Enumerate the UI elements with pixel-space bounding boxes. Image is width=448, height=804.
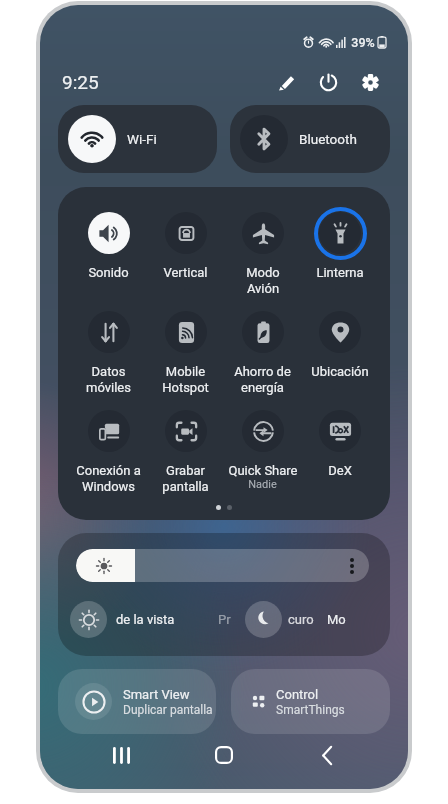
button[interactable]: Sonido xyxy=(70,206,147,305)
staticText: Duplicar pantalla xyxy=(123,703,213,717)
button[interactable]: Settings xyxy=(353,65,387,99)
button[interactable] xyxy=(76,549,369,582)
button[interactable]: Back xyxy=(305,733,349,777)
staticText: SmartThings xyxy=(276,703,345,717)
staticText: Mobile Hotspot xyxy=(162,364,209,395)
staticText: Ahorro de energía xyxy=(234,364,291,395)
staticText: Ubicación xyxy=(311,364,369,379)
staticText: 9:25 xyxy=(62,71,99,93)
staticText: Pr xyxy=(218,612,231,627)
staticText: Grabar pantalla xyxy=(162,463,209,494)
staticText: Nadie xyxy=(248,478,277,491)
button[interactable]: Datos móviles xyxy=(70,305,147,404)
staticText: Linterna xyxy=(316,265,364,280)
button[interactable]: DeX xyxy=(301,404,378,503)
button[interactable]: Vertical xyxy=(147,206,224,305)
button[interactable]: Ubicación xyxy=(301,305,378,404)
staticText: Conexión a Windows xyxy=(76,463,141,494)
button[interactable]: Conexión a Windows xyxy=(70,404,147,503)
button[interactable]: Bluetooth xyxy=(230,105,390,173)
button[interactable]: Mobile Hotspot xyxy=(147,305,224,404)
button[interactable]: Power xyxy=(311,65,345,99)
button[interactable]: Wi-Fi xyxy=(58,105,217,173)
staticText: Vertical xyxy=(163,265,208,280)
staticText: DeX xyxy=(328,463,352,478)
staticText: Datos móviles xyxy=(86,364,131,395)
button[interactable]: Quick Share xyxy=(224,404,301,503)
staticText: Quick Share xyxy=(228,463,298,478)
button[interactable]: Control xyxy=(231,669,390,734)
button[interactable]: Smart View xyxy=(58,669,216,734)
button[interactable]: Ahorro de energía xyxy=(224,305,301,404)
staticText: 39% xyxy=(351,35,375,50)
staticText: Modo Avión xyxy=(246,265,280,296)
button[interactable]: Modo Avión xyxy=(224,206,301,305)
staticText: Mo xyxy=(327,612,346,627)
button[interactable]: Home xyxy=(202,733,246,777)
staticText: Bluetooth xyxy=(299,131,357,147)
staticText: Control xyxy=(276,687,319,702)
button[interactable]: Linterna xyxy=(301,206,378,305)
staticText: Wi-Fi xyxy=(127,131,157,147)
staticText: Smart View xyxy=(123,687,190,702)
staticText: de la vista xyxy=(116,612,175,627)
button[interactable]: Grabar pantalla xyxy=(147,404,224,503)
button[interactable]: Recents xyxy=(99,733,143,777)
staticText: curo xyxy=(288,612,314,627)
staticText: Sonido xyxy=(88,265,129,280)
button[interactable]: Edit xyxy=(269,65,303,99)
